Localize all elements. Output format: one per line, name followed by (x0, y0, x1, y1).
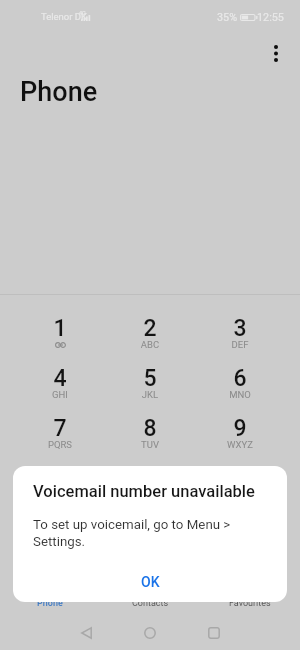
button[interactable]: More options (262, 39, 290, 67)
staticText: TUV (105, 439, 195, 450)
staticText: To set up voicemail, go to Menu > Settin… (33, 517, 231, 549)
staticText: + (105, 489, 195, 500)
staticText: 1 (15, 315, 105, 342)
staticText: # (195, 465, 285, 492)
staticText: 12:55 (257, 11, 284, 24)
button[interactable]: 0 (105, 465, 195, 515)
button[interactable]: 6 (195, 365, 285, 415)
staticText: Phone (37, 598, 63, 609)
staticText: PQRS (15, 439, 105, 450)
button[interactable]: Recents (199, 618, 229, 648)
staticText: GHI (15, 389, 105, 400)
button[interactable]: OK (127, 570, 174, 594)
staticText: 2 (105, 315, 195, 342)
staticText: 6 (195, 365, 285, 392)
button[interactable]: 5 (105, 365, 195, 415)
staticText (195, 489, 285, 500)
button[interactable]: Favourites (200, 592, 300, 614)
button[interactable]: 1 (15, 315, 105, 365)
staticText: ABC (105, 339, 195, 350)
staticText: 4 (15, 365, 105, 392)
button[interactable]: 8 (105, 415, 195, 465)
button[interactable]: # (195, 465, 285, 515)
staticText: MNO (195, 389, 285, 400)
staticText: Phone (20, 76, 98, 108)
button[interactable]: Home (135, 618, 165, 648)
button[interactable]: 7 (15, 415, 105, 465)
staticText: OK (141, 574, 160, 590)
staticText: 35% (217, 11, 238, 24)
button[interactable]: Phone (0, 592, 100, 614)
staticText: WXYZ (195, 439, 285, 450)
button[interactable]: 4 (15, 365, 105, 415)
button[interactable]: Back (71, 618, 101, 648)
staticText: 5 (105, 365, 195, 392)
staticText: 8 (105, 415, 195, 442)
staticText: 9 (195, 415, 285, 442)
staticText: DEF (195, 339, 285, 350)
staticText: Telenor DK (41, 11, 88, 22)
staticText: 7 (15, 415, 105, 442)
button[interactable]: 9 (195, 415, 285, 465)
staticText: Contacts (132, 598, 169, 609)
button[interactable]: Contacts (100, 592, 200, 614)
staticText: Favourites (229, 598, 271, 609)
staticText: * (15, 465, 105, 492)
button[interactable]: * (15, 465, 105, 515)
button[interactable]: 3 (195, 315, 285, 365)
staticText: 4G (79, 10, 86, 16)
button[interactable]: 2 (105, 315, 195, 365)
staticText: 3 (195, 315, 285, 342)
staticText: Voicemail number unavailable (33, 482, 255, 501)
staticText (15, 489, 105, 500)
staticText: JKL (105, 389, 195, 400)
staticText: 0 (105, 465, 195, 492)
